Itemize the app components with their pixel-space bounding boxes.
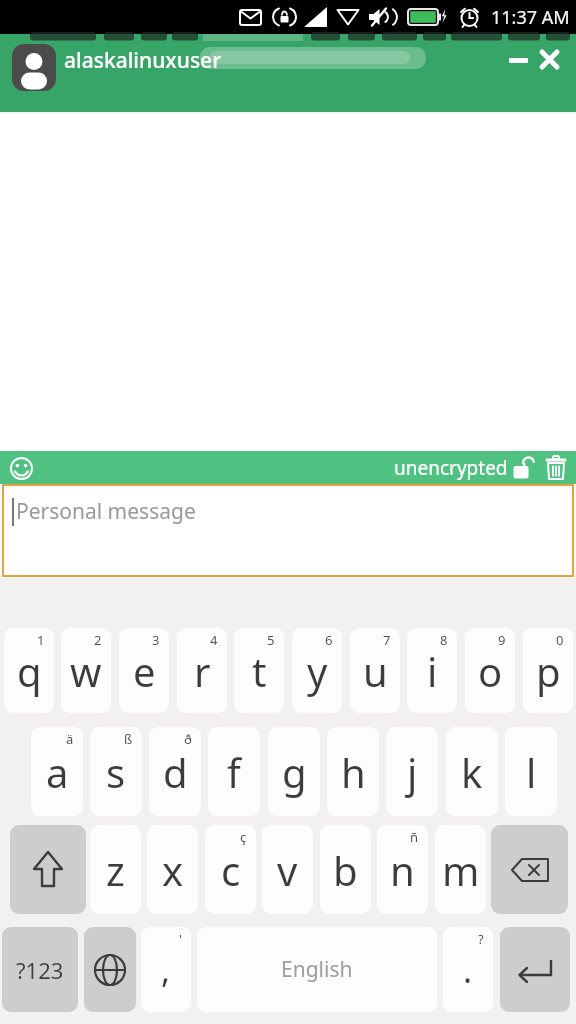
- staticText: s: [106, 745, 126, 799]
- staticText: p: [536, 644, 561, 698]
- staticText: Personal message: [16, 497, 196, 526]
- staticText: 5: [267, 631, 275, 649]
- button[interactable]: b: [320, 825, 371, 914]
- button[interactable]: k: [446, 727, 498, 816]
- staticText: c: [221, 843, 241, 897]
- button[interactable]: 2: [61, 628, 111, 713]
- staticText: f: [227, 745, 241, 799]
- staticText: d: [163, 745, 188, 799]
- staticText: 7: [383, 631, 391, 649]
- staticText: l: [526, 745, 537, 799]
- staticText: 8: [440, 631, 448, 649]
- button[interactable]: 6: [292, 628, 342, 713]
- button[interactable]: ä: [31, 727, 83, 816]
- staticText: ç: [240, 828, 247, 846]
- button[interactable]: [9, 456, 33, 480]
- staticText: r: [194, 644, 211, 698]
- staticText: k: [461, 745, 483, 799]
- button[interactable]: [84, 927, 136, 1012]
- button[interactable]: f: [208, 727, 260, 816]
- staticText: English: [281, 955, 353, 984]
- button[interactable]: ç: [205, 825, 256, 914]
- staticText: 4: [210, 631, 218, 649]
- staticText: n: [390, 843, 415, 897]
- staticText: h: [341, 745, 366, 799]
- staticText: alaskalinuxuser: [64, 46, 222, 75]
- button[interactable]: 5: [234, 628, 284, 713]
- button[interactable]: [8, 38, 428, 104]
- staticText: .: [463, 947, 473, 993]
- staticText: x: [162, 843, 184, 897]
- button[interactable]: v: [262, 825, 313, 914]
- button[interactable]: [12, 44, 56, 91]
- button[interactable]: 9: [465, 628, 515, 713]
- staticText: v: [277, 843, 298, 897]
- button[interactable]: h: [327, 727, 379, 816]
- button[interactable]: 8: [407, 628, 457, 713]
- button[interactable]: ?: [443, 927, 493, 1012]
- staticText: ä: [66, 730, 74, 748]
- button[interactable]: [513, 455, 535, 481]
- staticText: i: [427, 644, 438, 698]
- staticText: 11:37 AM: [491, 5, 570, 30]
- button[interactable]: x: [147, 825, 198, 914]
- button[interactable]: 1: [4, 628, 54, 713]
- button[interactable]: m: [435, 825, 486, 914]
- staticText: y: [307, 644, 328, 698]
- staticText: 2: [94, 631, 102, 649]
- staticText: z: [106, 843, 125, 897]
- button[interactable]: 0: [523, 628, 573, 713]
- button[interactable]: [544, 455, 568, 481]
- staticText: ñ: [410, 828, 419, 846]
- staticText: ß: [124, 730, 133, 748]
- staticText: j: [407, 745, 418, 799]
- staticText: a: [46, 745, 69, 799]
- staticText: b: [333, 843, 358, 897]
- button[interactable]: English: [197, 927, 437, 1012]
- staticText: unencrypted: [394, 455, 508, 481]
- staticText: ð: [184, 730, 192, 748]
- staticText: q: [17, 644, 42, 698]
- button[interactable]: z: [90, 825, 141, 914]
- button[interactable]: [491, 825, 568, 914]
- staticText: ?: [478, 930, 484, 948]
- button[interactable]: j: [386, 727, 438, 816]
- button[interactable]: Personal message: [2, 484, 574, 577]
- button[interactable]: 4: [177, 628, 227, 713]
- staticText: 0: [556, 631, 564, 649]
- staticText: 9: [498, 631, 506, 649]
- staticText: m: [442, 843, 480, 897]
- button[interactable]: 3: [119, 628, 169, 713]
- button[interactable]: [502, 47, 534, 73]
- staticText: 6: [325, 631, 333, 649]
- button[interactable]: g: [268, 727, 320, 816]
- staticText: 3: [152, 631, 160, 649]
- staticText: ,: [161, 947, 171, 993]
- button[interactable]: ß: [90, 727, 142, 816]
- staticText: w: [70, 644, 102, 698]
- button[interactable]: ð: [149, 727, 201, 816]
- staticText: o: [478, 644, 503, 698]
- button[interactable]: 7: [350, 628, 400, 713]
- button[interactable]: [534, 45, 564, 73]
- button[interactable]: l: [505, 727, 557, 816]
- button[interactable]: ?123: [2, 927, 78, 1012]
- staticText: u: [363, 644, 388, 698]
- staticText: ': [179, 930, 182, 948]
- button[interactable]: [10, 825, 86, 914]
- staticText: g: [282, 745, 307, 799]
- staticText: 1: [37, 631, 45, 649]
- staticText: ?123: [16, 955, 64, 985]
- button[interactable]: ñ: [377, 825, 428, 914]
- staticText: t: [252, 644, 267, 698]
- staticText: e: [133, 644, 156, 698]
- button[interactable]: [500, 927, 570, 1012]
- button[interactable]: ': [141, 927, 191, 1012]
